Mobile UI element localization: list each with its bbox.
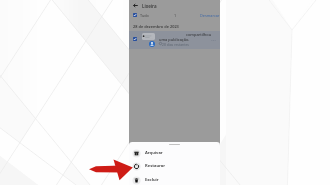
button[interactable]: Restaurar [129,159,220,173]
button[interactable]: Back [131,1,163,10]
button[interactable]: Arquivar [129,146,220,160]
staticText: compartilhou [186,32,212,37]
staticText: Excluir [145,177,159,183]
staticText: 28 de dezembro de 2023 [133,24,179,29]
button[interactable]: compartilhou [129,31,220,49]
staticText: 28 dias restantes [162,42,189,47]
button[interactable]: Desmarcar [200,11,220,16]
staticText: Tudo [140,13,149,18]
staticText: uma publicação. [159,37,190,42]
other: Back [133,3,138,8]
staticText: Restaurar [145,163,166,169]
button[interactable] [133,13,137,17]
staticText: 1 [174,13,177,18]
staticText: Arquivar [145,150,163,156]
staticText: Desmarcar [200,13,220,18]
button[interactable]: Excluir [129,173,220,185]
staticText: Lixeira [142,3,157,9]
